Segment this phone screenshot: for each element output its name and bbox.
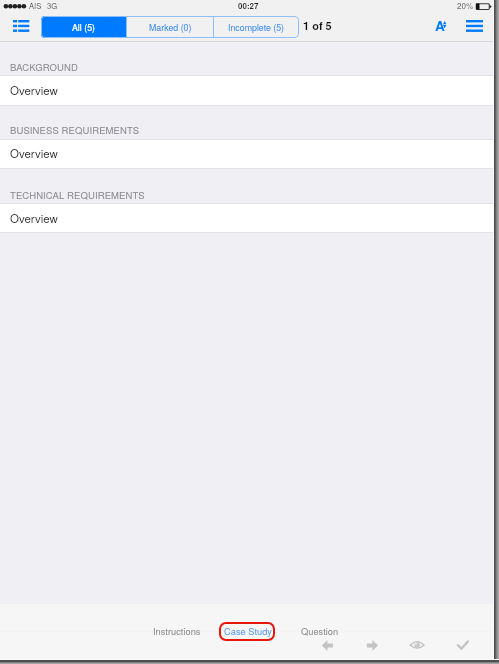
button[interactable]: Previous [311, 634, 344, 658]
staticText: BACKGROUND [10, 60, 78, 74]
button[interactable] [0, 76, 499, 105]
staticText: Case Study [224, 624, 273, 637]
staticText: Overview [10, 82, 58, 98]
staticText: Instructions [153, 624, 201, 637]
staticText: BUSINESS REQUIREMENTS [10, 123, 140, 137]
staticText: Overview [10, 210, 58, 226]
staticText: 3G [47, 0, 58, 11]
staticText: TECHNICAL REQUIREMENTS [10, 188, 145, 202]
staticText: 20% [457, 0, 474, 11]
button[interactable] [0, 140, 499, 168]
staticText: AIS [29, 0, 42, 11]
button[interactable] [0, 204, 499, 232]
button[interactable]: Text size [430, 14, 452, 40]
button[interactable]: Menu [458, 14, 489, 40]
button[interactable]: Marked (0) [127, 16, 213, 38]
staticText: 1 of 5 [303, 18, 332, 34]
staticText: All (5) [72, 21, 95, 34]
staticText: A [435, 16, 445, 35]
button[interactable]: Submit [446, 634, 479, 658]
staticText: Marked (0) [149, 21, 192, 34]
staticText: Question [301, 624, 339, 637]
staticText: Incomplete (5) [228, 21, 285, 34]
button[interactable]: Sections [5, 14, 36, 40]
button[interactable]: Next [356, 634, 389, 658]
button[interactable]: Instructions [150, 620, 204, 640]
button[interactable]: All (5) [41, 16, 126, 38]
button[interactable]: Incomplete (5) [214, 16, 299, 38]
button[interactable]: Preview [401, 634, 434, 658]
button[interactable]: Case Study [221, 620, 274, 640]
button[interactable]: Question [297, 620, 340, 640]
staticText: 00:27 [238, 0, 259, 11]
staticText: Overview [10, 145, 58, 161]
